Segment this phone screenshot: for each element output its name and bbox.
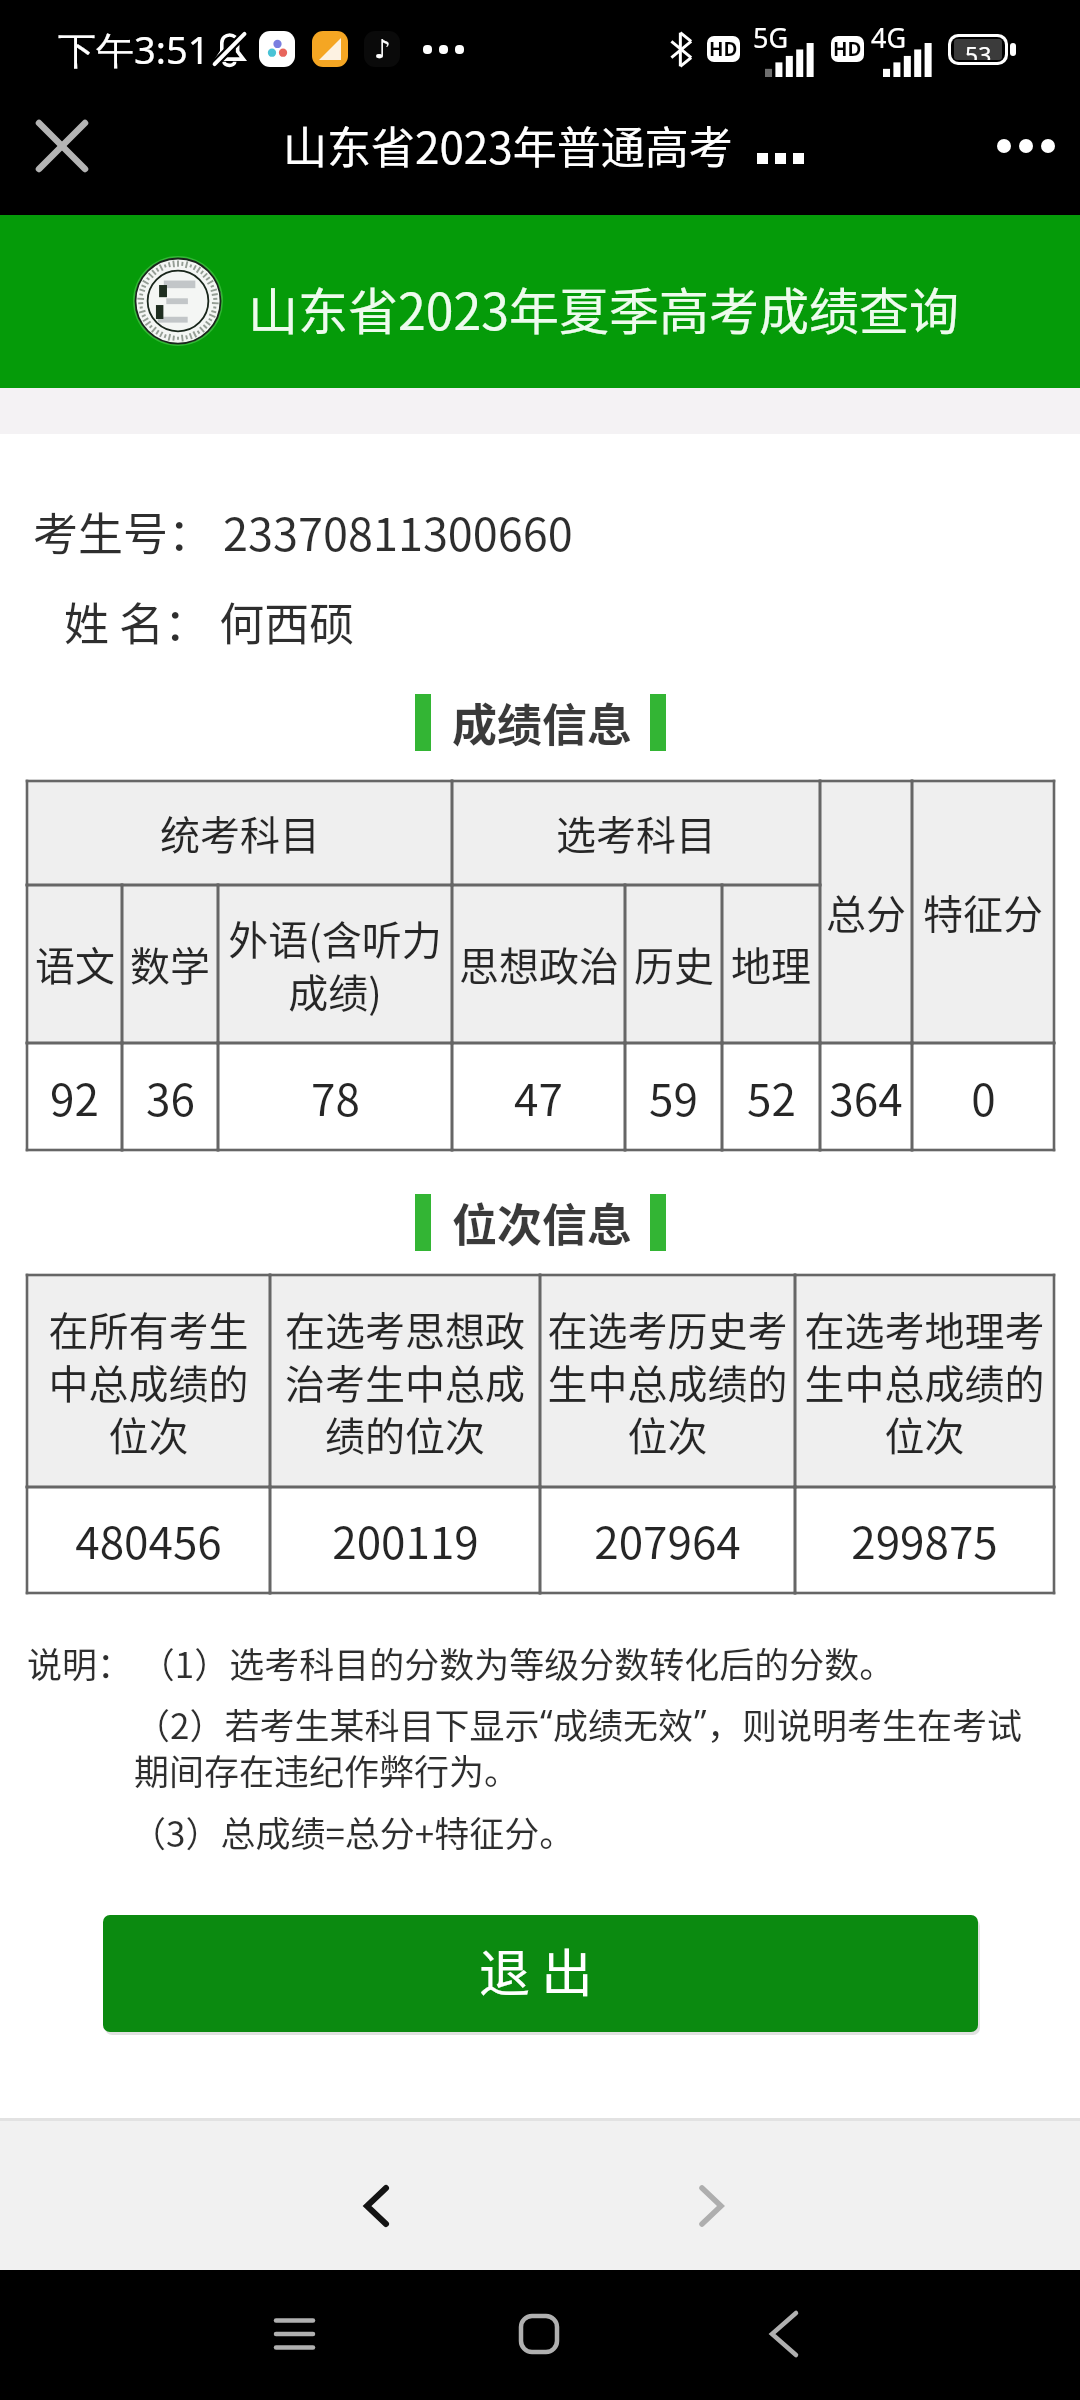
- staticText: 480456: [75, 1508, 222, 1572]
- staticText: 在选考历史考生中总成绩的位次: [545, 1300, 790, 1462]
- button[interactable]: Back: [316, 2146, 436, 2266]
- staticText: 92: [50, 1065, 99, 1129]
- staticText: 364: [829, 1065, 903, 1129]
- staticText: 山东省2023年普通高考: [283, 113, 733, 177]
- button[interactable]: Close: [20, 104, 104, 188]
- staticText: HD: [833, 36, 862, 62]
- staticText: （2）若考生某科目下显示: [135, 1698, 540, 1749]
- staticText: 总分: [826, 883, 906, 941]
- staticText: 207964: [594, 1508, 741, 1572]
- staticText: 0: [971, 1065, 996, 1129]
- staticText: 姓 名： 何西硕: [64, 589, 355, 654]
- button[interactable]: More options: [984, 104, 1068, 188]
- staticText: 考生号： 23370811300660: [33, 499, 573, 564]
- staticText: 退 出: [479, 1933, 593, 2007]
- staticText: 在选考思想政治考生中总成绩的位次: [275, 1300, 535, 1462]
- staticText: 4G: [871, 19, 907, 56]
- staticText: 下午3:51: [58, 23, 210, 75]
- staticText: “: [540, 1698, 553, 1746]
- staticText: 地理: [731, 935, 811, 993]
- staticText: 位次信息: [452, 1190, 633, 1255]
- staticText: HD: [709, 36, 738, 62]
- staticText: 统考科目: [160, 804, 320, 862]
- button[interactable]: 退 出: [103, 1915, 978, 2032]
- staticText: ♪: [374, 34, 391, 64]
- staticText: 数学: [130, 935, 210, 993]
- button[interactable]: Back: [724, 2274, 844, 2394]
- staticText: 47: [514, 1065, 563, 1129]
- staticText: 思想政治: [459, 935, 619, 993]
- staticText: 59: [649, 1065, 698, 1129]
- staticText: 历史: [634, 935, 714, 993]
- staticText: 在选考地理考生中总成绩的位次: [800, 1300, 1049, 1462]
- staticText: ”: [694, 1698, 707, 1746]
- staticText: 52: [747, 1065, 796, 1129]
- button[interactable]: Home: [479, 2274, 599, 2394]
- staticText: 299875: [851, 1508, 998, 1572]
- button[interactable]: Recent apps: [234, 2274, 354, 2394]
- staticText: 36: [146, 1065, 195, 1129]
- staticText: ，则说明考生在考试: [707, 1698, 1023, 1749]
- staticText: 语文: [35, 935, 115, 993]
- staticText: 200119: [332, 1508, 479, 1572]
- staticText: 在所有考生中总成绩的位次: [32, 1300, 265, 1462]
- staticText: 选考科目: [556, 804, 716, 862]
- staticText: 53: [965, 39, 992, 60]
- staticText: 成绩无效: [553, 1698, 694, 1749]
- staticText: 5G: [753, 19, 789, 56]
- staticText: 特征分: [923, 883, 1043, 941]
- staticText: 外语(含听力成绩): [221, 909, 449, 1019]
- staticText: 成绩信息: [452, 690, 633, 755]
- staticText: 山东省2023年夏季高考成绩查询: [248, 272, 959, 344]
- button[interactable]: Forward: [651, 2146, 771, 2266]
- staticText: 期间存在违纪作弊行为。: [134, 1744, 520, 1795]
- staticText: 说明： （1）选考科目的分数为等级分数转化后的分数。: [27, 1637, 895, 1688]
- staticText: （3）总成绩=总分+特征分。: [131, 1806, 575, 1857]
- staticText: 78: [311, 1065, 360, 1129]
